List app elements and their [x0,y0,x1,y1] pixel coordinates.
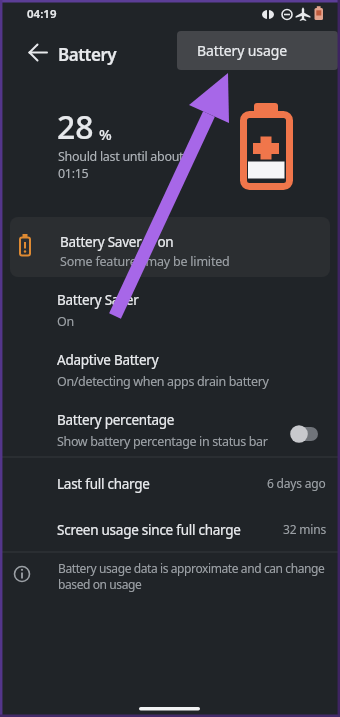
staticText: On/detecting when apps drain battery [57,373,269,390]
staticText: Battery usage data is approximate and ca… [58,560,325,592]
staticText: Battery [58,43,117,66]
button[interactable]: Battery usage [177,31,338,70]
button[interactable]: Screen usage since full charge [0,504,340,550]
staticText: Should last until about 01:15 [58,148,184,181]
button[interactable]: Last full charge [0,458,340,504]
button[interactable]: Adaptive Battery [0,344,340,400]
button[interactable]: Battery Saver [0,284,340,340]
staticText: Show battery percentage in status bar [57,433,268,450]
staticText: % [99,124,112,144]
staticText: 28 [57,105,94,149]
staticText: 6 days ago [267,475,326,491]
staticText: Adaptive Battery [57,351,159,369]
staticText: Screen usage since full charge [57,521,241,539]
staticText: Last full charge [57,475,150,493]
staticText: Some features may be limited [60,253,230,270]
button[interactable] [16,39,44,67]
staticText: 04:19 [27,6,57,22]
button[interactable]: Battery Saver is on [10,217,330,277]
staticText: On [57,313,75,330]
staticText: Battery percentage [57,411,175,429]
staticText: Battery Saver [57,291,139,309]
staticText: Battery Saver is on [60,233,174,251]
staticText: 32 mins [283,521,326,537]
button[interactable]: Battery percentage [0,404,340,460]
staticText: Battery usage [197,41,287,60]
